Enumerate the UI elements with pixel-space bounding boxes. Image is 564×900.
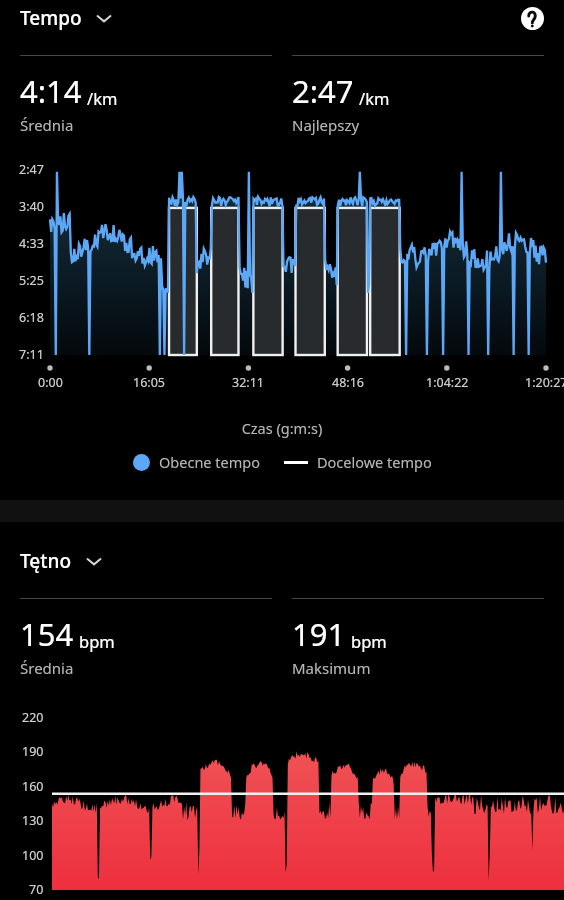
staticText: 1:04:22: [426, 374, 469, 391]
staticText: 0:00: [38, 374, 63, 391]
staticText: 220: [22, 709, 44, 726]
staticText: /km: [87, 87, 118, 109]
staticText: Tętno: [20, 548, 72, 574]
staticText: Najlepszy: [292, 115, 360, 135]
button[interactable]: 154: [20, 613, 115, 678]
staticText: Średnia: [20, 115, 74, 135]
staticText: Czas (g:m:s): [0, 418, 564, 438]
staticText: 100: [22, 847, 44, 864]
button[interactable]: Tętno: [20, 548, 103, 574]
button[interactable]: 4:14: [20, 70, 118, 135]
staticText: 7:11: [19, 346, 44, 363]
staticText: bpm: [79, 630, 115, 652]
staticText: 130: [22, 812, 44, 829]
staticText: 3:40: [19, 198, 44, 215]
staticText: 32:11: [232, 374, 264, 391]
staticText: 154: [20, 613, 74, 655]
staticText: 5:25: [19, 272, 44, 289]
staticText: 6:18: [19, 309, 44, 326]
staticText: 48:16: [332, 374, 364, 391]
staticText: Tempo: [20, 5, 82, 31]
staticText: 4:33: [19, 235, 44, 252]
staticText: Obecne tempo: [159, 452, 260, 472]
staticText: 4:14: [20, 70, 82, 112]
button[interactable]: 191: [292, 613, 387, 678]
staticText: 1:20:27: [525, 374, 564, 391]
button[interactable]: 2:47: [292, 70, 390, 135]
staticText: 190: [22, 743, 44, 760]
staticText: /km: [359, 87, 390, 109]
staticText: bpm: [351, 630, 387, 652]
staticText: 2:47: [19, 161, 44, 178]
button[interactable]: Help: [518, 4, 546, 32]
button[interactable]: Tempo: [20, 5, 113, 31]
staticText: Średnia: [20, 658, 74, 678]
staticText: Docelowe tempo: [317, 452, 432, 472]
staticText: 2:47: [292, 70, 354, 112]
staticText: Maksimum: [292, 658, 371, 678]
staticText: 70: [29, 881, 44, 898]
staticText: 191: [292, 613, 346, 655]
staticText: 160: [22, 778, 44, 795]
staticText: 16:05: [133, 374, 165, 391]
